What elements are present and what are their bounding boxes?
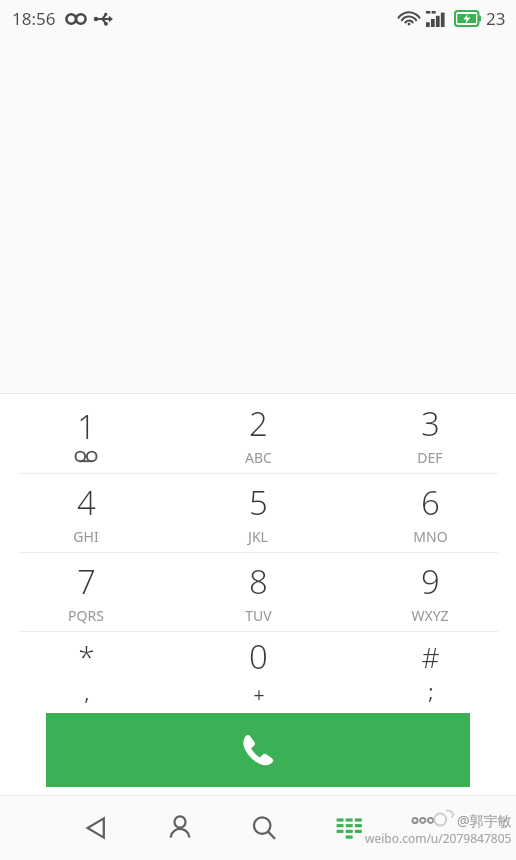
- staticText: WXYZ: [411, 606, 449, 625]
- staticText: JKL: [248, 527, 268, 546]
- staticText: 8: [249, 559, 268, 604]
- button[interactable]: 7: [0, 553, 172, 631]
- staticText: 2: [249, 401, 268, 446]
- button[interactable]: 6: [344, 474, 516, 552]
- staticText: PQRS: [68, 606, 104, 625]
- staticText: GHI: [73, 527, 99, 546]
- button[interactable]: Call: [46, 713, 470, 787]
- staticText: *: [78, 636, 95, 677]
- staticText: #: [421, 638, 440, 676]
- staticText: 1: [77, 404, 96, 449]
- staticText: TUV: [245, 606, 272, 625]
- button[interactable]: *: [0, 632, 172, 710]
- staticText: 3: [421, 401, 440, 446]
- staticText: @郭宇敏: [457, 811, 512, 830]
- button[interactable]: 2: [172, 394, 344, 473]
- button[interactable]: 1: [0, 394, 172, 473]
- button[interactable]: #: [344, 632, 516, 710]
- staticText: 4: [77, 480, 96, 525]
- staticText: 6: [421, 480, 440, 525]
- button[interactable]: Dialpad: [324, 804, 372, 852]
- button[interactable]: Search: [240, 804, 288, 852]
- button[interactable]: 4: [0, 474, 172, 552]
- button[interactable]: 3: [344, 394, 516, 473]
- staticText: 5: [249, 480, 268, 525]
- button[interactable]: 0: [172, 632, 344, 710]
- button[interactable]: Contacts: [156, 804, 204, 852]
- staticText: ,: [84, 679, 90, 706]
- button[interactable]: 8: [172, 553, 344, 631]
- staticText: +: [253, 681, 265, 708]
- staticText: 23: [486, 7, 506, 30]
- staticText: ABC: [245, 448, 272, 467]
- staticText: 7: [77, 559, 96, 604]
- staticText: DEF: [417, 448, 443, 467]
- staticText: 0: [249, 634, 268, 679]
- staticText: 18:56: [12, 7, 56, 30]
- staticText: 9: [421, 559, 440, 604]
- staticText: MNO: [413, 527, 448, 546]
- button[interactable]: Back: [72, 804, 120, 852]
- button[interactable]: 9: [344, 553, 516, 631]
- staticText: ;: [428, 678, 434, 705]
- staticText: weibo.com/u/2079847805: [365, 830, 512, 846]
- button[interactable]: 5: [172, 474, 344, 552]
